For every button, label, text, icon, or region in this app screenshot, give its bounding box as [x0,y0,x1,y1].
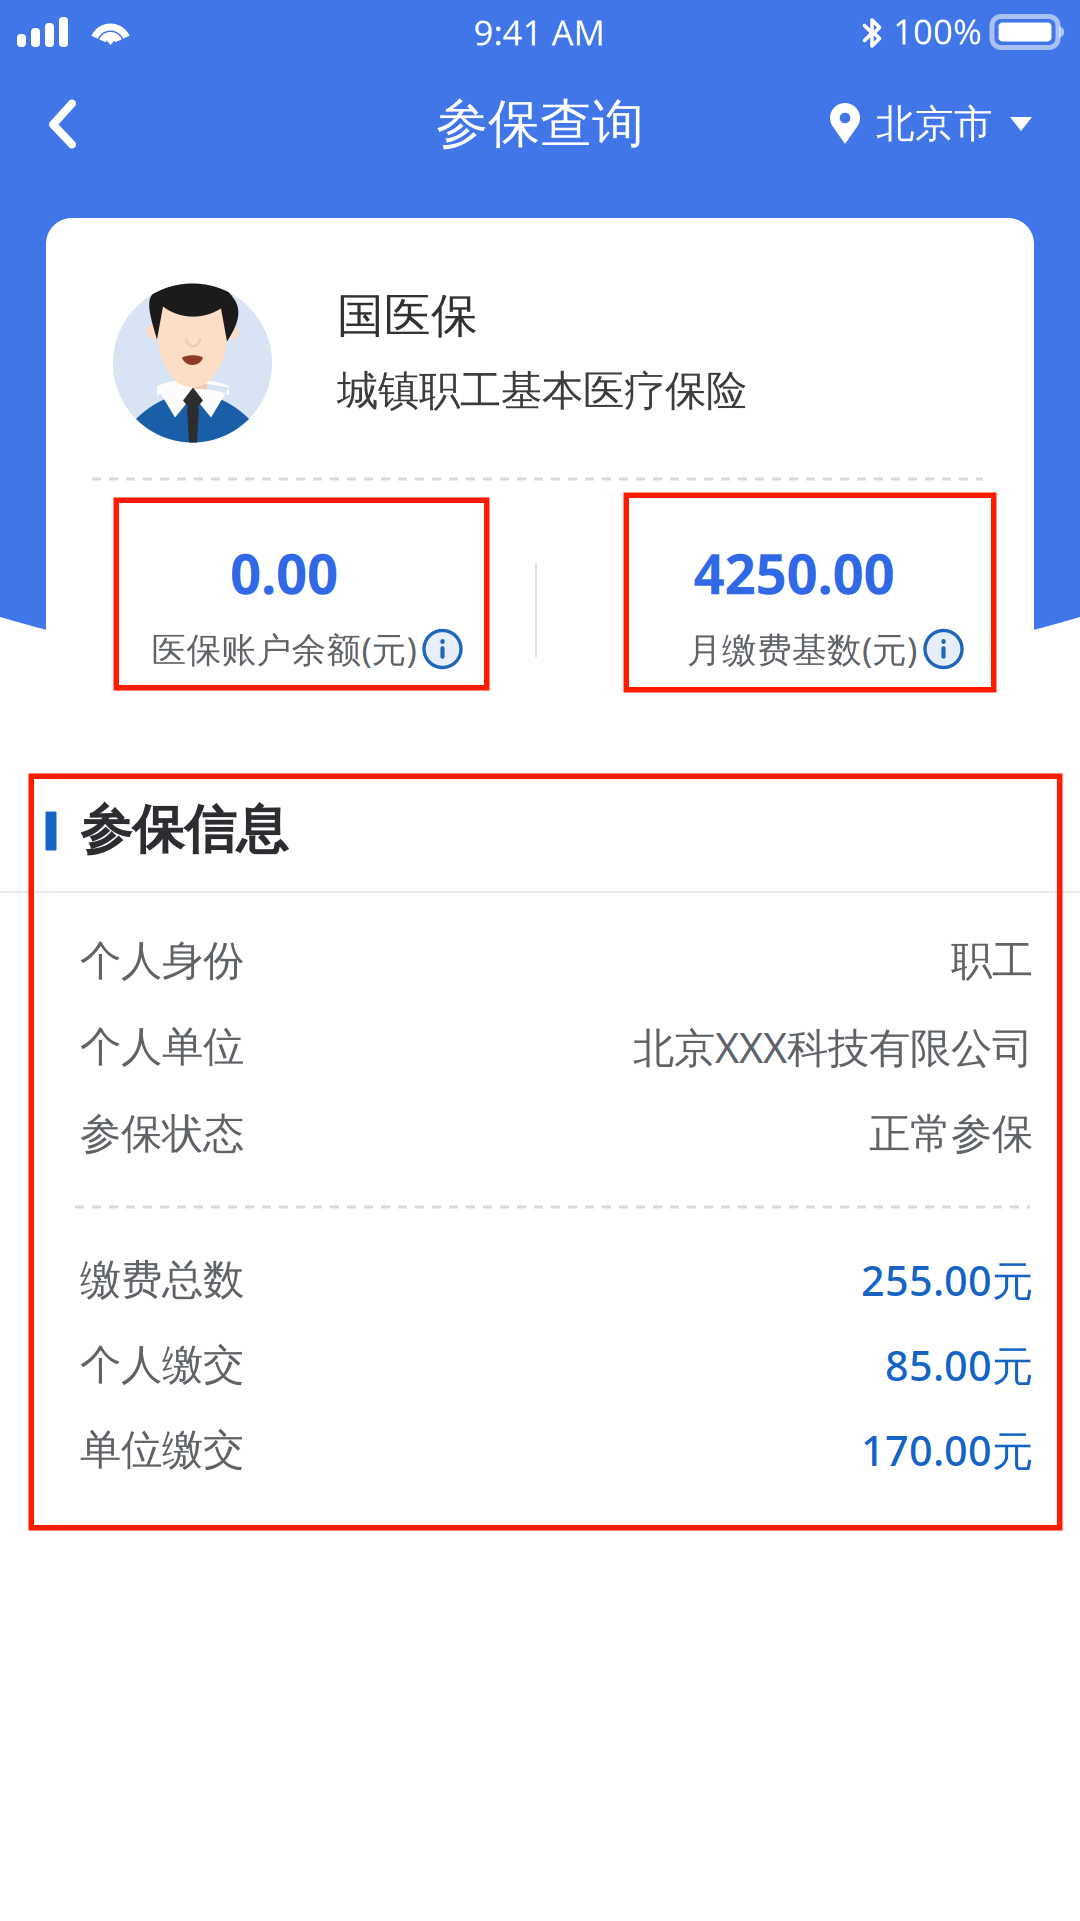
staticText: 医保账户余额(元) [151,626,416,672]
staticText: 单位缴交 [80,1425,244,1475]
staticText: 职工 [951,936,1033,986]
staticText: 个人身份 [80,936,244,986]
staticText: 正常参保 [869,1109,1033,1159]
button[interactable]: 北京市 [830,74,1032,174]
staticText: 参保状态 [80,1109,244,1159]
staticText: 个人缴交 [80,1340,244,1390]
staticText: 4250.00 [693,537,894,609]
staticText: 北京市 [876,100,993,148]
staticText: 0.00 [230,537,338,609]
staticText: 个人单位 [80,1022,244,1072]
staticText: 月缴费基数(元) [687,626,917,672]
staticText: 国医保 [337,287,478,345]
button[interactable]: Back [7,69,117,179]
staticText: 城镇职工基本医疗保险 [337,366,747,416]
staticText: 100% [893,8,982,54]
staticText: 北京XXX科技有限公司 [633,1020,1033,1074]
staticText: 参保查询 [436,92,644,156]
staticText: 9:41 AM [473,9,604,55]
staticText: 缴费总数 [80,1255,244,1305]
staticText: 170.00元 [861,1423,1033,1477]
staticText: 85.00元 [885,1338,1033,1392]
staticText: 255.00元 [861,1253,1033,1307]
staticText: 参保信息 [80,798,288,862]
